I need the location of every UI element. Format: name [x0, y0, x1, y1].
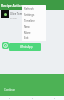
staticText: Continue: [4, 88, 16, 92]
staticText: More: [24, 31, 31, 35]
staticText: Recipe Actions: [1, 3, 25, 8]
staticText: 20 min: [10, 17, 17, 20]
button[interactable]: New: [22, 24, 46, 30]
staticText: Olive Tomato: [10, 12, 27, 16]
button[interactable]: More: [22, 30, 46, 36]
button[interactable]: WhatsApp: [2, 42, 9, 49]
staticText: Refresh: [24, 7, 34, 11]
button[interactable]: Timeline: [22, 18, 46, 24]
button[interactable]: Refresh: [22, 6, 46, 12]
staticText: Exit: [24, 36, 29, 40]
button[interactable]: Exit: [22, 36, 46, 40]
button[interactable]: Settings: [22, 12, 46, 18]
staticText: Timeline: [24, 19, 35, 23]
button[interactable]: [1, 10, 9, 18]
button[interactable]: Recipe Actions: [0, 0, 64, 10]
staticText: New: [24, 25, 30, 29]
button[interactable]: WhatsApp: [9, 43, 41, 51]
staticText: Settings: [24, 13, 35, 17]
staticText: WhatsApp: [20, 45, 33, 49]
